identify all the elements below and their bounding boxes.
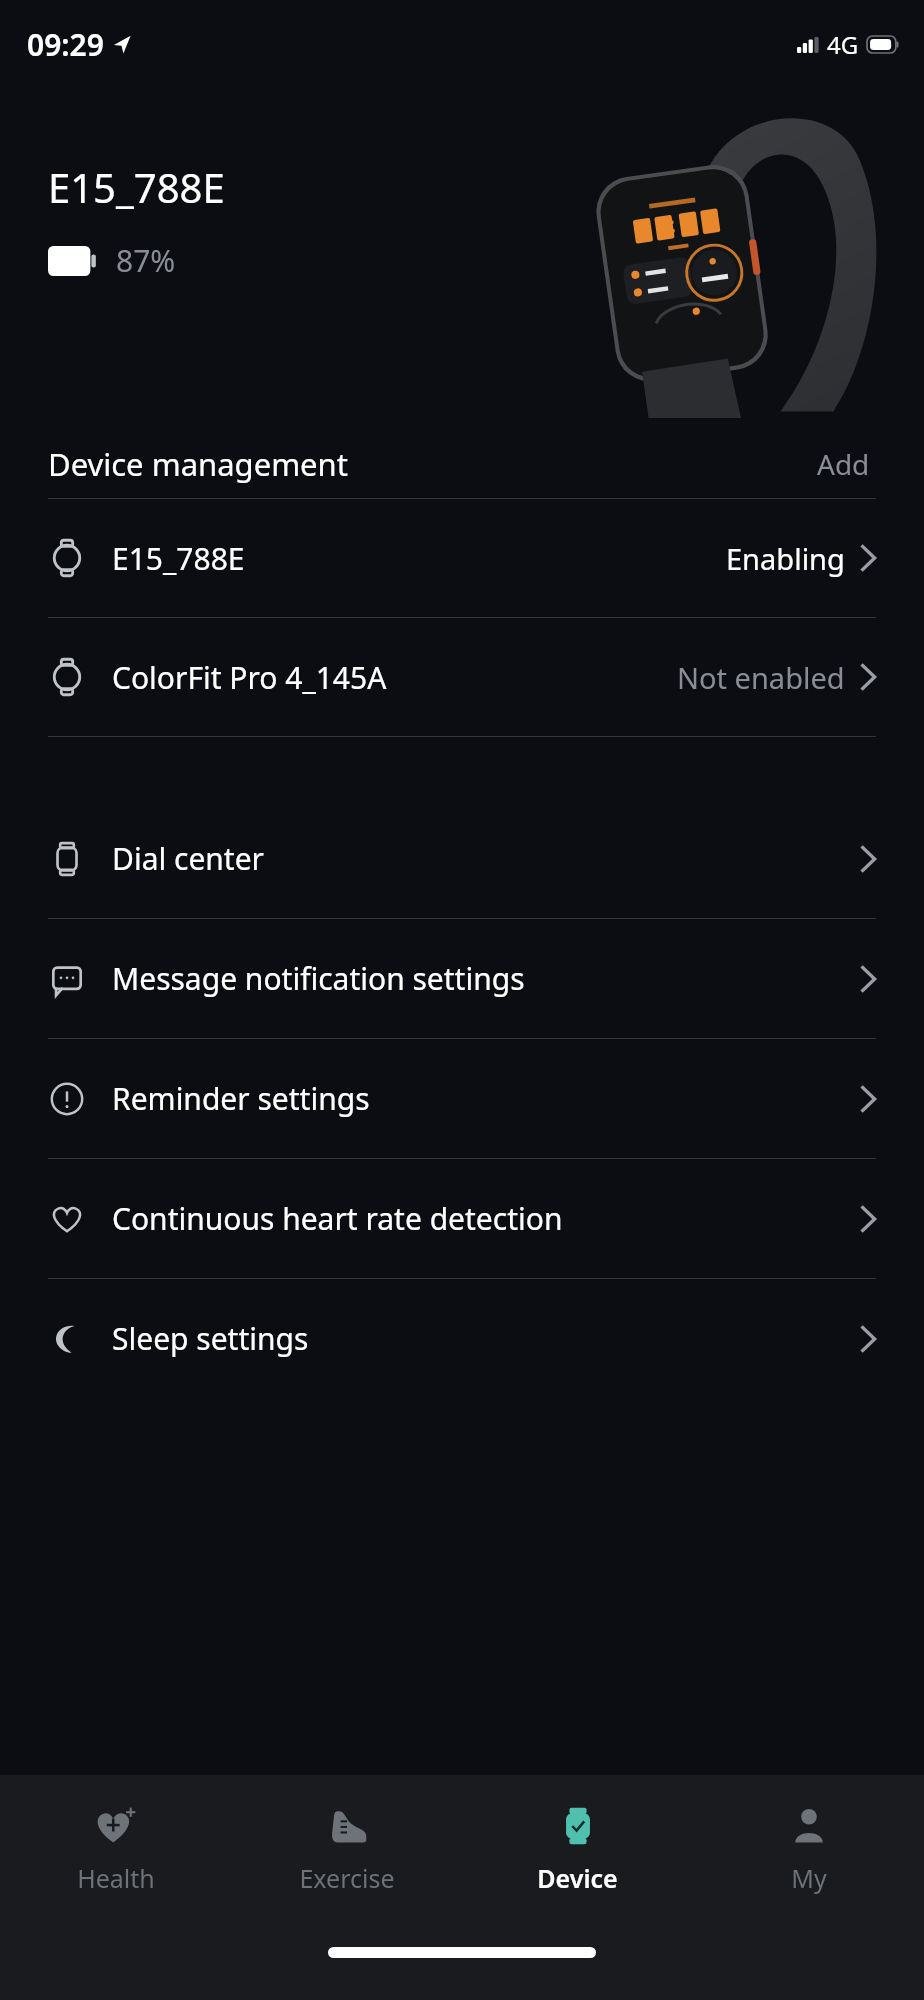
other: Health bbox=[93, 1803, 139, 1849]
staticText: Dial center bbox=[112, 838, 265, 879]
staticText: My bbox=[791, 1861, 827, 1895]
button[interactable]: Add bbox=[811, 439, 876, 489]
staticText: E15_788E bbox=[48, 160, 225, 214]
button[interactable]: Exercise bbox=[231, 1775, 462, 1935]
staticText: Continuous heart rate detection bbox=[112, 1198, 563, 1239]
staticText: Message notification settings bbox=[112, 958, 525, 999]
staticText: Add bbox=[817, 445, 870, 483]
staticText: Sleep settings bbox=[112, 1318, 309, 1359]
staticText: Health bbox=[77, 1861, 155, 1895]
other: My bbox=[786, 1803, 832, 1849]
button[interactable]: Message notification settings bbox=[0, 919, 924, 1038]
staticText: 87% bbox=[116, 240, 176, 281]
staticText: Exercise bbox=[299, 1861, 395, 1895]
staticText: E15_788E bbox=[112, 538, 245, 579]
button[interactable]: E15_788E bbox=[0, 499, 924, 617]
staticText: ColorFit Pro 4_145A bbox=[112, 657, 387, 698]
button[interactable]: Device bbox=[462, 1775, 693, 1935]
staticText: 09:29 bbox=[27, 24, 104, 65]
other: Device bbox=[555, 1803, 601, 1849]
button[interactable]: Dial center bbox=[0, 799, 924, 918]
button[interactable]: Continuous heart rate detection bbox=[0, 1159, 924, 1278]
staticText: Enabling bbox=[726, 539, 845, 578]
button[interactable]: Reminder settings bbox=[0, 1039, 924, 1158]
staticText: 4G bbox=[827, 28, 859, 61]
staticText: Reminder settings bbox=[112, 1078, 370, 1119]
staticText: Device management bbox=[48, 443, 348, 485]
button[interactable]: Sleep settings bbox=[0, 1279, 924, 1398]
staticText: Device bbox=[537, 1861, 618, 1895]
button[interactable]: ColorFit Pro 4_145A bbox=[0, 618, 924, 736]
button[interactable]: Health bbox=[0, 1775, 231, 1935]
other: Exercise bbox=[324, 1803, 370, 1849]
staticText: Not enabled bbox=[677, 658, 845, 697]
button[interactable]: My bbox=[693, 1775, 924, 1935]
